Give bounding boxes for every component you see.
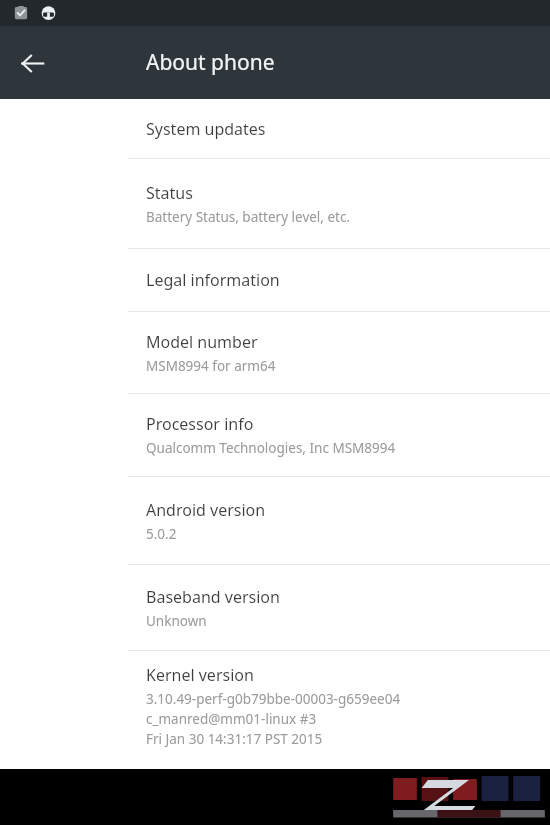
staticText: Kernel version	[146, 664, 254, 686]
staticText: About phone	[146, 48, 275, 77]
button[interactable]: Android version	[0, 477, 550, 564]
staticText: Battery Status, battery level, etc.	[146, 208, 351, 226]
button[interactable]: Navigate up	[9, 40, 55, 86]
staticText: 3.10.49-perf-g0b79bbe-00003-g659ee04	[146, 690, 401, 708]
button[interactable]: Processor info	[0, 394, 550, 476]
button[interactable]: System updates	[0, 99, 550, 158]
staticText: 5.0.2	[146, 525, 177, 543]
staticText: Android version	[146, 499, 266, 521]
staticText: Unknown	[146, 612, 207, 630]
button[interactable]: Model number	[0, 312, 550, 393]
staticText: Processor info	[146, 413, 254, 435]
staticText: MSM8994 for arm64	[146, 357, 276, 375]
staticText: Legal information	[146, 269, 280, 291]
button[interactable]: Kernel version	[0, 651, 550, 761]
staticText: Fri Jan 30 14:31:17 PST 2015	[146, 730, 323, 748]
staticText: c_manred@mm01-linux #3	[146, 710, 317, 728]
staticText: System updates	[146, 118, 266, 140]
staticText: Model number	[146, 331, 258, 353]
staticText: Baseband version	[146, 586, 280, 608]
staticText: Qualcomm Technologies, Inc MSM8994	[146, 439, 396, 457]
staticText: Status	[146, 182, 193, 204]
button[interactable]: Status	[0, 159, 550, 248]
button[interactable]: Legal information	[0, 249, 550, 311]
button[interactable]: Baseband version	[0, 565, 550, 650]
